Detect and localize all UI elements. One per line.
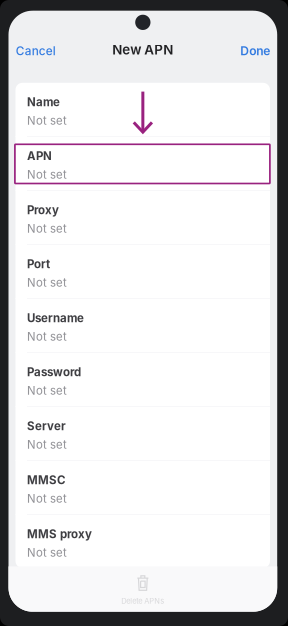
button[interactable]: Server [15,407,270,460]
staticText: MMSC [27,473,65,487]
button[interactable]: Done [232,38,277,64]
staticText: MMS proxy [27,527,92,541]
staticText: Not set [27,438,67,451]
staticText: Name [27,95,60,109]
staticText: Delete APNs [121,596,164,605]
staticText: Password [27,365,81,379]
staticText: Not set [27,168,67,181]
button[interactable]: Proxy [15,191,270,244]
staticText: Not set [27,384,67,397]
staticText: Not set [27,492,67,505]
button[interactable]: Name [15,83,270,136]
staticText: Done [240,44,270,58]
staticText: Username [27,311,84,325]
staticText: Not set [27,276,67,289]
staticText: Not set [27,546,67,559]
button[interactable]: MMSC [15,461,270,514]
staticText: Not set [27,114,67,127]
staticText: Port [27,257,50,271]
staticText: Server [27,419,66,433]
button[interactable]: Password [15,353,270,406]
button[interactable]: Username [15,299,270,352]
staticText: New APN [112,42,173,58]
staticText: Proxy [27,203,59,217]
staticText: APN [27,149,52,163]
button[interactable]: MMS proxy [15,515,270,568]
button[interactable]: APN [15,137,270,190]
button[interactable]: Cancel [8,38,64,64]
staticText: Cancel [16,44,56,58]
staticText: Not set [27,330,67,343]
staticText: Not set [27,222,67,235]
button[interactable]: Delete APNs [8,566,277,611]
button[interactable]: Port [15,245,270,298]
